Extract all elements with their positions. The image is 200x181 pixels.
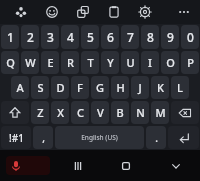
button[interactable]: 0: [181, 25, 199, 49]
staticText: 9: [167, 29, 174, 45]
staticText: .: [155, 131, 158, 145]
staticText: D: [56, 80, 65, 95]
button[interactable]: K: [151, 76, 169, 99]
staticText: B: [116, 105, 124, 120]
button[interactable]: Home: [100, 150, 152, 181]
button[interactable]: Backspace: [171, 101, 199, 124]
staticText: E: [47, 55, 54, 70]
staticText: Z: [37, 105, 44, 120]
button[interactable]: S: [31, 76, 49, 99]
button[interactable]: Emoji sticker: [10, 1, 32, 23]
staticText: English (US): [81, 133, 118, 142]
staticText: R: [67, 55, 74, 70]
button[interactable]: 3: [41, 25, 59, 49]
button[interactable]: I: [141, 51, 159, 74]
button[interactable]: 5: [81, 25, 99, 49]
button[interactable]: M: [151, 101, 169, 124]
staticText: P: [187, 55, 194, 70]
button[interactable]: ,: [33, 126, 53, 149]
staticText: 6: [107, 29, 114, 45]
staticText: X: [57, 105, 64, 120]
staticText: 8: [147, 29, 154, 45]
staticText: 0: [187, 29, 194, 45]
button[interactable]: 7: [121, 25, 139, 49]
button[interactable]: D: [51, 76, 69, 99]
button[interactable]: Enter: [168, 126, 199, 149]
button[interactable]: G: [91, 76, 109, 99]
button[interactable]: V: [91, 101, 109, 124]
staticText: S: [37, 80, 44, 95]
staticText: F: [77, 80, 83, 95]
button[interactable]: .: [146, 126, 166, 149]
button[interactable]: Q: [1, 51, 19, 74]
staticText: 7: [127, 29, 134, 45]
button[interactable]: 2: [21, 25, 39, 49]
staticText: !#1: [9, 131, 24, 145]
staticText: I: [148, 55, 152, 70]
button[interactable]: English (US): [55, 126, 144, 149]
button[interactable]: 9: [161, 25, 179, 49]
button[interactable]: C: [71, 101, 89, 124]
button[interactable]: Recents: [56, 150, 100, 181]
button[interactable]: More options: [173, 1, 195, 23]
button[interactable]: A: [11, 76, 29, 99]
button[interactable]: P: [181, 51, 199, 74]
staticText: M: [155, 105, 166, 120]
button[interactable]: N: [131, 101, 149, 124]
staticText: C: [77, 105, 84, 120]
button[interactable]: Hide keyboard: [152, 150, 200, 181]
staticText: O: [166, 55, 175, 70]
button[interactable]: Emoji: [41, 1, 63, 23]
staticText: 4: [67, 29, 74, 45]
button[interactable]: Shift: [1, 101, 29, 124]
button[interactable]: U: [121, 51, 139, 74]
staticText: Q: [6, 55, 15, 70]
button[interactable]: H: [111, 76, 129, 99]
button[interactable]: Settings: [134, 1, 156, 23]
button[interactable]: Translate: [72, 1, 94, 23]
staticText: W: [25, 55, 36, 70]
button[interactable]: !#1: [1, 126, 31, 149]
button[interactable]: E: [41, 51, 59, 74]
staticText: L: [177, 80, 183, 95]
button[interactable]: 6: [101, 25, 119, 49]
button[interactable]: Clipboard: [103, 1, 125, 23]
button[interactable]: O: [161, 51, 179, 74]
staticText: T: [87, 55, 94, 70]
staticText: Y: [107, 55, 114, 70]
button[interactable]: L: [171, 76, 189, 99]
staticText: N: [136, 105, 145, 120]
staticText: V: [97, 105, 104, 120]
button[interactable]: Y: [101, 51, 119, 74]
staticText: 1: [7, 29, 14, 45]
button[interactable]: X: [51, 101, 69, 124]
staticText: 5: [87, 29, 94, 45]
button[interactable]: J: [131, 76, 149, 99]
button[interactable]: Z: [31, 101, 49, 124]
button[interactable]: W: [21, 51, 39, 74]
staticText: K: [157, 80, 164, 95]
staticText: G: [96, 80, 104, 95]
button[interactable]: Voice input: [0, 150, 56, 181]
staticText: U: [126, 55, 135, 70]
staticText: A: [16, 80, 24, 95]
button[interactable]: F: [71, 76, 89, 99]
button[interactable]: T: [81, 51, 99, 74]
staticText: J: [138, 80, 142, 95]
button[interactable]: B: [111, 101, 129, 124]
staticText: ,: [42, 131, 45, 145]
button[interactable]: R: [61, 51, 79, 74]
staticText: 3: [47, 29, 54, 45]
button[interactable]: 1: [1, 25, 19, 49]
button[interactable]: 8: [141, 25, 159, 49]
staticText: 2: [27, 29, 34, 45]
staticText: H: [116, 80, 125, 95]
button[interactable]: 4: [61, 25, 79, 49]
